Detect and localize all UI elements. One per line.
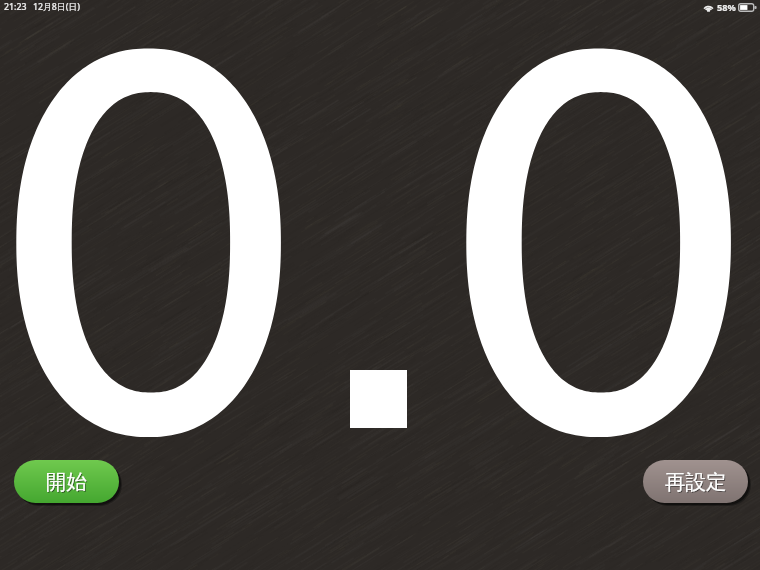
staticText: 21:23 — [4, 1, 27, 13]
button[interactable]: Start — [14, 460, 119, 503]
staticText: 再設定 — [666, 470, 728, 496]
staticText: 58% — [717, 1, 736, 14]
staticText: 再設定 — [665, 469, 727, 495]
staticText: 開始 — [46, 469, 87, 495]
staticText: 開始 — [47, 470, 88, 496]
button[interactable]: Reset — [643, 460, 748, 503]
staticText: 12月8日(日) — [33, 1, 80, 13]
